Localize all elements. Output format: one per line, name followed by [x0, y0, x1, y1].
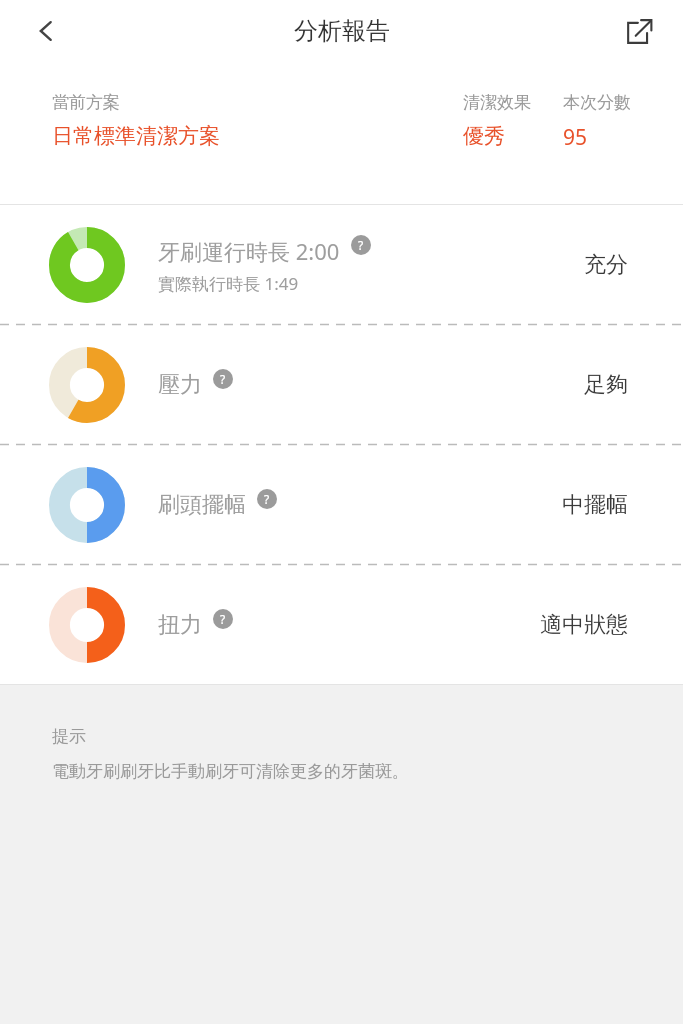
staticText: 優秀 [463, 123, 505, 149]
staticText: 牙刷運行時長 2:00 [158, 236, 340, 266]
staticText: 清潔效果 [463, 92, 531, 113]
staticText: 中擺幅 [562, 491, 628, 519]
staticText: 充分 [584, 251, 628, 279]
staticText: 刷頭擺幅 [158, 491, 246, 519]
staticText: 實際執行時長 1:49 [158, 272, 299, 295]
staticText: 本次分數 [563, 92, 631, 113]
button[interactable]: Back [22, 7, 70, 55]
staticText: 95 [563, 123, 588, 152]
staticText: ? [264, 491, 270, 507]
staticText: 日常標準清潔方案 [52, 123, 220, 149]
staticText: 分析報告 [294, 16, 390, 46]
staticText: 足夠 [584, 371, 628, 399]
staticText: 當前方案 [52, 92, 120, 113]
staticText: ? [220, 611, 226, 627]
button[interactable]: Share [615, 7, 663, 55]
button[interactable]: 壓力 [0, 325, 683, 444]
button[interactable]: 扭力 [0, 565, 683, 684]
staticText: 電動牙刷刷牙比手動刷牙可清除更多的牙菌斑。 [52, 761, 409, 782]
staticText: ? [358, 237, 364, 253]
staticText: 扭力 [158, 611, 202, 639]
staticText: 壓力 [158, 371, 202, 399]
staticText: ? [220, 371, 226, 387]
button[interactable]: 刷頭擺幅 [0, 445, 683, 564]
staticText: 適中狀態 [540, 611, 628, 639]
button[interactable]: 牙刷運行時長 2:00 [0, 205, 683, 324]
staticText: 提示 [52, 726, 86, 747]
